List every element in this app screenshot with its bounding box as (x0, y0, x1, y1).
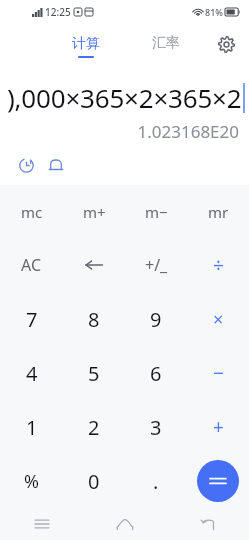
staticText: . (153, 468, 159, 495)
button[interactable]: 0 (63, 454, 125, 508)
button[interactable]: 1 (0, 400, 63, 454)
staticText: 81% (205, 6, 223, 18)
button[interactable]: Equals (197, 460, 239, 502)
staticText: 6 (150, 360, 162, 387)
staticText: + (213, 414, 224, 440)
button[interactable]: 计算 (62, 31, 110, 62)
button[interactable]: 2 (63, 400, 125, 454)
button[interactable]: AC (0, 238, 63, 292)
staticText: m− (145, 202, 168, 222)
button[interactable]: Scientific functions (44, 153, 68, 177)
button[interactable]: Back (166, 508, 249, 540)
button[interactable]: ÷ (187, 238, 249, 292)
staticText: +/_ (145, 254, 168, 276)
staticText: % (24, 469, 39, 494)
staticText: 12:25 (45, 5, 71, 19)
staticText: × (213, 307, 224, 332)
button[interactable]: Equals (187, 454, 249, 508)
staticText: − (213, 360, 224, 386)
staticText: mr (208, 202, 229, 222)
button[interactable]: Settings (211, 29, 241, 59)
staticText: 5 (88, 360, 100, 387)
button[interactable]: 6 (125, 346, 187, 400)
button[interactable]: 8 (63, 292, 125, 346)
staticText: m+ (83, 202, 106, 222)
button[interactable]: . (125, 454, 187, 508)
button[interactable]: mr (187, 185, 249, 238)
staticText: 1.023168E20 (137, 120, 239, 143)
button[interactable]: mc (0, 185, 63, 238)
button[interactable]: 4 (0, 346, 63, 400)
staticText: 9 (150, 306, 162, 333)
staticText: 4 (26, 360, 38, 387)
other: Backspace (79, 250, 109, 280)
staticText: 0 (88, 468, 100, 495)
staticText: 7 (26, 306, 38, 333)
staticText: 计算 (72, 35, 100, 53)
button[interactable]: Backspace (63, 238, 125, 292)
button[interactable]: 5 (63, 346, 125, 400)
button[interactable]: % (0, 454, 63, 508)
staticText: 1 (26, 414, 38, 441)
staticText: 2 (88, 414, 100, 441)
button[interactable]: Home (83, 508, 166, 540)
staticText: 8 (88, 306, 100, 333)
staticText: 3 (150, 414, 162, 441)
button[interactable]: +/_ (125, 238, 187, 292)
staticText: ÷ (213, 252, 224, 278)
button[interactable]: m+ (63, 185, 125, 238)
button[interactable]: 3 (125, 400, 187, 454)
button[interactable]: × (187, 292, 249, 346)
staticText: 汇率 (152, 34, 180, 52)
button[interactable]: 9 (125, 292, 187, 346)
staticText: ),000×365×2×365×2 (7, 80, 242, 115)
button[interactable]: Recents (0, 508, 83, 540)
button[interactable]: History (14, 153, 38, 177)
button[interactable]: 汇率 (142, 30, 190, 56)
button[interactable]: + (187, 400, 249, 454)
staticText: AC (21, 254, 42, 276)
staticText: mc (21, 202, 43, 222)
button[interactable]: − (187, 346, 249, 400)
button[interactable]: m− (125, 185, 187, 238)
button[interactable]: 7 (0, 292, 63, 346)
